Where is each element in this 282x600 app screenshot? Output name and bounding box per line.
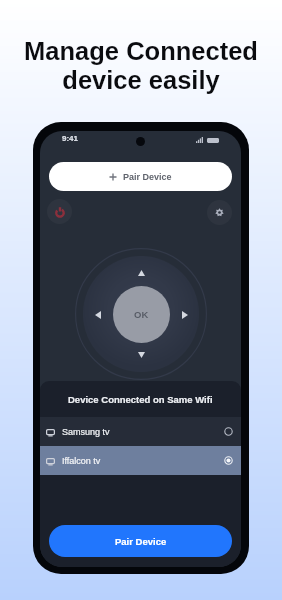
button[interactable]: Up bbox=[133, 265, 149, 281]
button[interactable]: Samsung tv bbox=[40, 417, 241, 446]
button[interactable]: Pair Device bbox=[49, 525, 232, 557]
staticText: Device Connected on Same Wifi bbox=[68, 394, 213, 405]
button[interactable]: Down bbox=[133, 347, 149, 363]
staticText: Iffalcon tv bbox=[62, 456, 101, 466]
button[interactable]: Pair Device bbox=[49, 162, 232, 191]
button[interactable]: OK bbox=[113, 286, 170, 343]
button[interactable]: Settings bbox=[207, 200, 232, 225]
staticText: Samsung tv bbox=[62, 427, 110, 437]
button[interactable]: Power bbox=[47, 199, 72, 224]
staticText: 9:41 bbox=[62, 134, 79, 143]
staticText: Pair Device bbox=[115, 536, 167, 547]
button[interactable]: Left bbox=[90, 307, 106, 323]
staticText: Pair Device bbox=[123, 172, 172, 182]
staticText: Manage Connected device easily bbox=[0, 37, 282, 94]
staticText: OK bbox=[134, 309, 149, 320]
button[interactable]: Iffalcon tv bbox=[40, 446, 241, 475]
button[interactable]: Right bbox=[177, 307, 193, 323]
